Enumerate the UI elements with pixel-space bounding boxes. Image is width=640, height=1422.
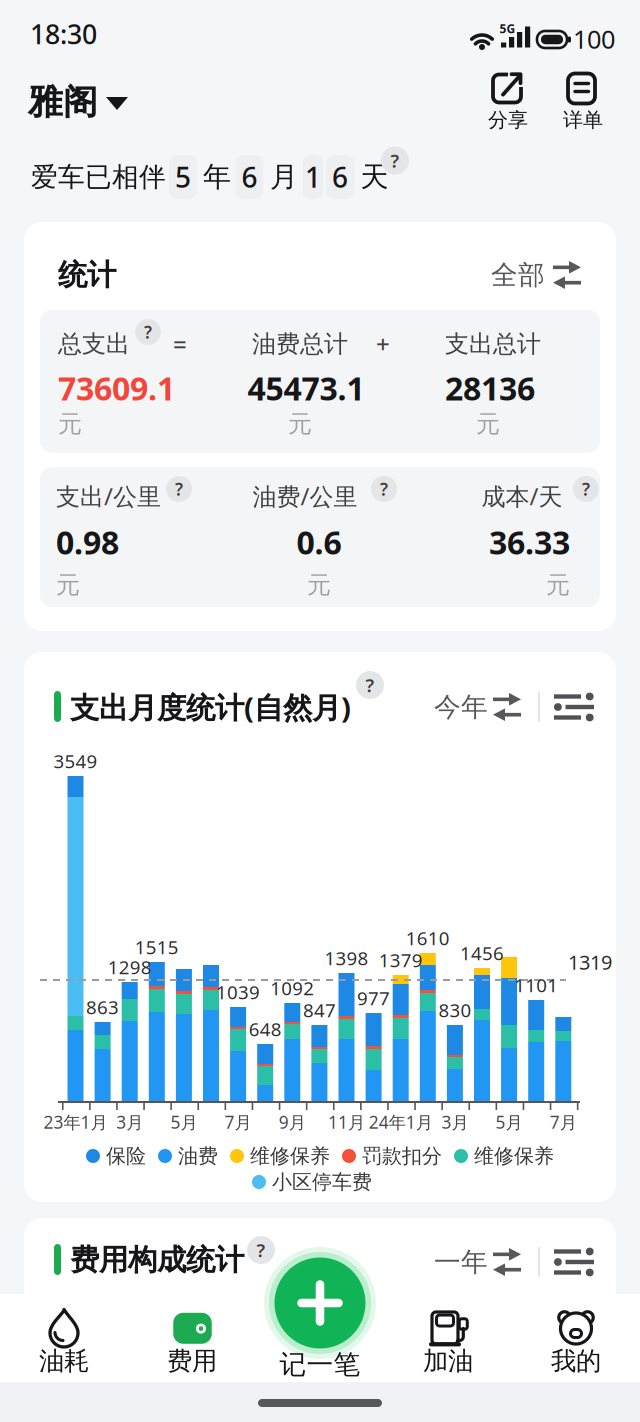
staticText: 847	[303, 998, 336, 1022]
staticText: 1092	[270, 976, 314, 1000]
staticText: 1101	[514, 973, 558, 997]
staticText: 维修保养	[250, 1144, 330, 1168]
staticText: 分享	[488, 108, 528, 132]
button[interactable]: 帮助	[573, 476, 599, 502]
staticText: 863	[86, 995, 119, 1019]
staticText: ?	[582, 477, 590, 500]
button[interactable]: 切换今年	[434, 687, 524, 727]
staticText: 1610	[406, 926, 450, 950]
button[interactable]: 帮助	[166, 476, 192, 502]
staticText: 元	[58, 409, 82, 439]
staticText: 元	[476, 409, 500, 439]
staticText: ?	[175, 477, 183, 500]
button[interactable]: 帮助	[135, 319, 161, 345]
staticText: 支出/公里	[56, 480, 161, 512]
staticText: 费用	[167, 1345, 217, 1376]
button[interactable]: 切换统计范围	[491, 255, 583, 295]
button[interactable]: 帮助	[247, 1236, 275, 1264]
button[interactable]: 筛选设置	[552, 687, 596, 727]
staticText: 100	[573, 22, 615, 56]
button[interactable]: 费用	[160, 1308, 224, 1376]
button[interactable]: 筛选设置	[552, 1242, 596, 1282]
staticText: 总支出	[58, 329, 130, 359]
staticText: 1398	[324, 946, 368, 970]
staticText: =	[173, 328, 187, 360]
staticText: 830	[438, 998, 471, 1022]
button[interactable]: 帮助	[381, 146, 409, 174]
staticText: 支出月度统计(自然月)	[70, 687, 351, 726]
button[interactable]: 帮助	[371, 476, 397, 502]
button[interactable]: 切换车辆	[26, 75, 166, 129]
staticText: 保险	[106, 1144, 146, 1168]
staticText: 加油	[423, 1345, 473, 1376]
staticText: 维修保养	[474, 1144, 554, 1168]
staticText: 9月	[279, 1110, 306, 1133]
staticText: 月	[270, 160, 298, 194]
staticText: 年	[203, 160, 231, 194]
button[interactable]: 油耗	[32, 1308, 96, 1376]
staticText: 元	[56, 570, 80, 600]
button[interactable]: 详单	[561, 66, 605, 128]
staticText: 5G	[499, 20, 515, 36]
staticText: 详单	[563, 108, 603, 132]
staticText: 3月	[116, 1110, 143, 1133]
staticText: 罚款扣分	[362, 1144, 442, 1168]
staticText: 36.33	[489, 521, 570, 563]
staticText: 油耗	[39, 1345, 89, 1376]
staticText: 0.6	[296, 521, 341, 563]
button[interactable]: 帮助	[356, 671, 384, 699]
staticText: 28136	[445, 367, 535, 409]
staticText: 648	[249, 1017, 282, 1041]
button[interactable]: 我的	[544, 1308, 608, 1376]
staticText: 全部	[491, 259, 545, 291]
staticText: 6	[241, 158, 257, 196]
staticText: 油费	[178, 1144, 218, 1168]
staticText: ?	[380, 477, 388, 500]
staticText: 元	[288, 409, 312, 439]
staticText: 费用构成统计	[70, 1242, 244, 1278]
staticText: +	[376, 328, 390, 360]
staticText: 小区停车费	[272, 1170, 372, 1194]
staticText: 元	[307, 570, 331, 600]
staticText: 一年	[434, 1246, 488, 1278]
staticText: 23年1月	[43, 1110, 107, 1133]
button[interactable]: 记一笔	[263, 1253, 377, 1375]
staticText: 成本/天	[481, 480, 562, 512]
staticText: 1456	[460, 941, 504, 965]
staticText: 3549	[53, 749, 97, 773]
staticText: 油费总计	[252, 329, 348, 359]
button[interactable]: 切换一年	[434, 1242, 524, 1282]
staticText: 24年1月	[369, 1110, 433, 1133]
staticText: 3月	[441, 1110, 468, 1133]
staticText: 元	[546, 570, 570, 600]
staticText: ?	[365, 673, 374, 697]
staticText: 5	[175, 158, 191, 196]
staticText: 7月	[225, 1110, 252, 1133]
staticText: 1298	[108, 955, 152, 979]
staticText: 雅阁	[28, 81, 98, 123]
staticText: 记一笔	[279, 1348, 360, 1381]
button[interactable]: 分享	[486, 66, 530, 128]
staticText: 18:30	[30, 16, 97, 52]
staticText: 1	[305, 158, 321, 196]
staticText: 73609.1	[58, 367, 175, 409]
staticText: 1319	[568, 949, 612, 975]
staticText: 我的	[551, 1345, 601, 1376]
staticText: ?	[256, 1238, 265, 1262]
staticText: 油费/公里	[252, 480, 357, 512]
staticText: 5月	[496, 1110, 523, 1133]
staticText: 977	[357, 986, 390, 1010]
staticText: 0.98	[56, 521, 119, 563]
staticText: 11月	[328, 1110, 365, 1133]
staticText: 支出总计	[445, 329, 541, 359]
staticText: 今年	[434, 691, 488, 723]
staticText: ?	[144, 320, 152, 343]
staticText: 爱车已相伴	[31, 161, 166, 193]
staticText: ?	[390, 148, 399, 173]
staticText: 1379	[379, 948, 423, 972]
button[interactable]: 加油	[416, 1308, 480, 1376]
staticText: 45473.1	[247, 367, 364, 409]
staticText: 天	[360, 160, 388, 194]
staticText: 7月	[550, 1110, 577, 1133]
staticText: 5月	[170, 1110, 197, 1133]
